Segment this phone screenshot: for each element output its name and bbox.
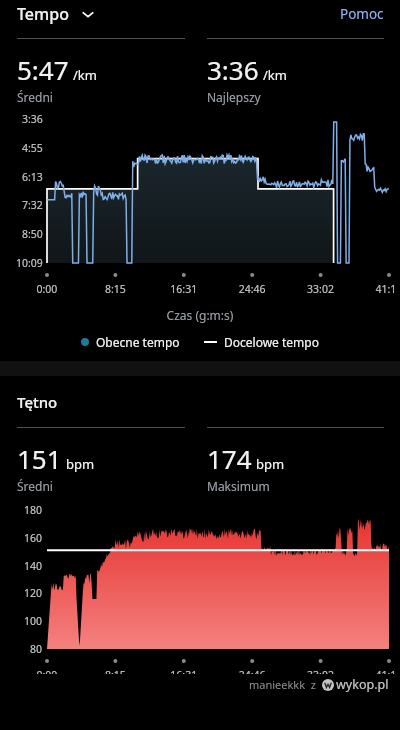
other: Zmień wykres (80, 6, 96, 22)
staticText: Docelowe tempo (224, 334, 319, 350)
staticText: 5:47 (17, 52, 69, 87)
staticText: Obecne tempo (96, 334, 180, 350)
staticText: manieekkk z (249, 677, 317, 692)
staticText: wykop.pl (336, 676, 389, 693)
staticText: /km (263, 66, 287, 84)
button[interactable]: Tempo (17, 3, 96, 25)
staticText: bpm (66, 455, 95, 473)
staticText: Pomoc (340, 5, 384, 23)
staticText: 174 (207, 441, 252, 476)
staticText: Średni (17, 89, 53, 105)
staticText: Najlepszy (207, 89, 261, 105)
staticText: /km (73, 66, 97, 84)
button[interactable]: 5:47 (17, 38, 185, 105)
button[interactable]: 151 (17, 427, 185, 494)
staticText: Tętno (17, 392, 58, 412)
button[interactable]: Pomoc (340, 5, 400, 23)
button[interactable]: Obecne tempo (81, 334, 180, 350)
staticText: Czas (g:m:s) (0, 307, 400, 323)
button[interactable]: Docelowe tempo (204, 334, 319, 350)
staticText: Tempo (17, 3, 69, 25)
staticText: 151 (17, 441, 62, 476)
staticText: Maksimum (207, 478, 270, 494)
staticText: 3:36 (207, 52, 259, 87)
staticText: bpm (256, 455, 285, 473)
button[interactable]: 3:36 (207, 38, 384, 105)
staticText: Średni (17, 478, 53, 494)
button[interactable]: 174 (207, 427, 384, 494)
